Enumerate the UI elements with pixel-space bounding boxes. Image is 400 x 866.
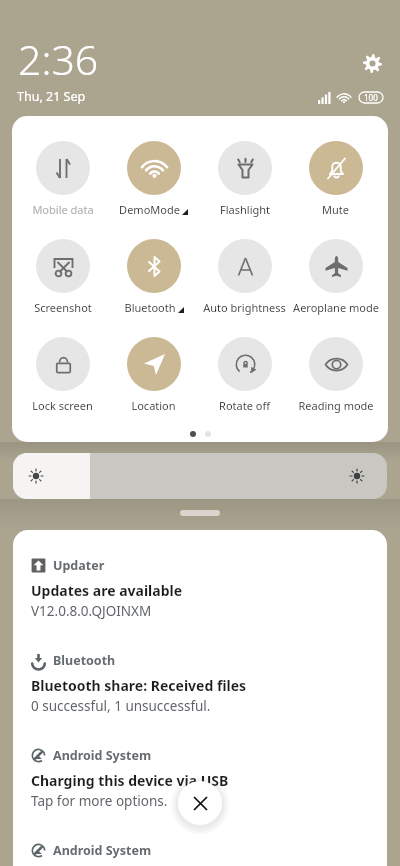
button[interactable]: Auto brightness — [199, 239, 290, 315]
button[interactable]: Location — [108, 337, 199, 413]
button[interactable]: Aeroplane mode — [290, 239, 381, 315]
staticText: Tap for more options. — [31, 792, 168, 810]
button[interactable]: Android System — [13, 810, 387, 859]
staticText: Rotate off — [219, 398, 270, 413]
staticText: Thu, 21 Sep — [17, 88, 86, 105]
button[interactable]: DemoMode — [108, 141, 199, 217]
staticText: DemoMode — [119, 202, 180, 217]
button[interactable]: Clear all notifications — [178, 781, 222, 825]
button[interactable]: Updater — [13, 530, 387, 620]
staticText: Lock screen — [32, 398, 93, 413]
staticText: Reading mode — [298, 398, 374, 413]
staticText: Updater — [53, 557, 105, 574]
staticText: Android System — [53, 842, 152, 859]
button[interactable]: Bluetooth — [108, 239, 199, 315]
button[interactable]: Brightness — [13, 453, 387, 499]
button[interactable]: Rotate off — [199, 337, 290, 413]
staticText: V12.0.8.0.QJOINXM — [31, 602, 152, 620]
staticText: Charging this device via USB — [31, 771, 229, 790]
staticText: 100 — [364, 92, 378, 103]
button[interactable]: Mute — [290, 141, 381, 217]
staticText: Bluetooth — [53, 652, 116, 669]
staticText: Bluetooth share: Received files — [31, 676, 247, 695]
button[interactable]: Screenshot — [17, 239, 108, 315]
button[interactable]: Mobile data — [17, 141, 108, 217]
button[interactable]: Android System — [13, 715, 387, 810]
staticText: Location — [131, 398, 176, 413]
button[interactable]: Flashlight — [199, 141, 290, 217]
button[interactable]: Reading mode — [290, 337, 381, 413]
button[interactable]: Lock screen — [17, 337, 108, 413]
staticText: 2:36 — [18, 31, 99, 87]
staticText: Screenshot — [34, 300, 92, 315]
staticText: Flashlight — [220, 202, 270, 217]
staticText: Updates are available — [31, 581, 183, 600]
staticText: Android System — [53, 747, 152, 764]
staticText: Aeroplane mode — [293, 300, 379, 315]
staticText: Auto brightness — [203, 300, 286, 315]
button[interactable]: Settings — [356, 47, 388, 79]
button[interactable]: Bluetooth — [13, 620, 387, 715]
staticText: 0 successful, 1 unsuccessful. — [31, 697, 211, 715]
staticText: Mute — [322, 202, 349, 217]
staticText: Bluetooth — [124, 300, 176, 315]
staticText: Mobile data — [32, 202, 94, 217]
